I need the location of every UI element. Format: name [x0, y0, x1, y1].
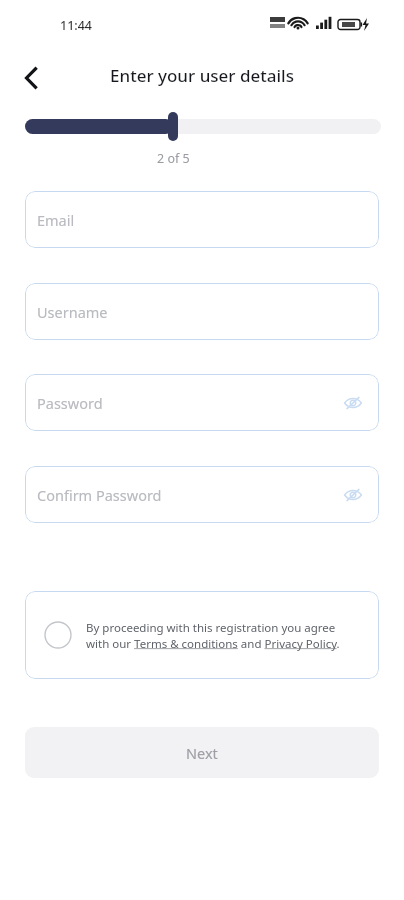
staticText: Confirm Password [37, 485, 162, 505]
staticText: By proceeding with this registration you… [86, 620, 356, 651]
button[interactable]: Password [25, 374, 379, 431]
button[interactable]: Show password [339, 481, 367, 509]
staticText: 11:44 [60, 17, 93, 34]
staticText: Enter your user details [110, 64, 294, 87]
staticText: 2 of 5 [157, 150, 190, 167]
button[interactable]: Confirm Password [25, 466, 379, 523]
staticText: Username [37, 302, 108, 322]
button[interactable]: Back [10, 56, 54, 100]
button[interactable]: Username [25, 283, 379, 340]
staticText: Password [37, 393, 103, 413]
button[interactable]: Email [25, 191, 379, 248]
button[interactable]: Next [25, 727, 379, 778]
button[interactable]: By proceeding with this registration you… [25, 591, 379, 679]
staticText: Next [186, 743, 218, 763]
staticText: Email [37, 210, 75, 230]
button[interactable]: Show password [339, 389, 367, 417]
